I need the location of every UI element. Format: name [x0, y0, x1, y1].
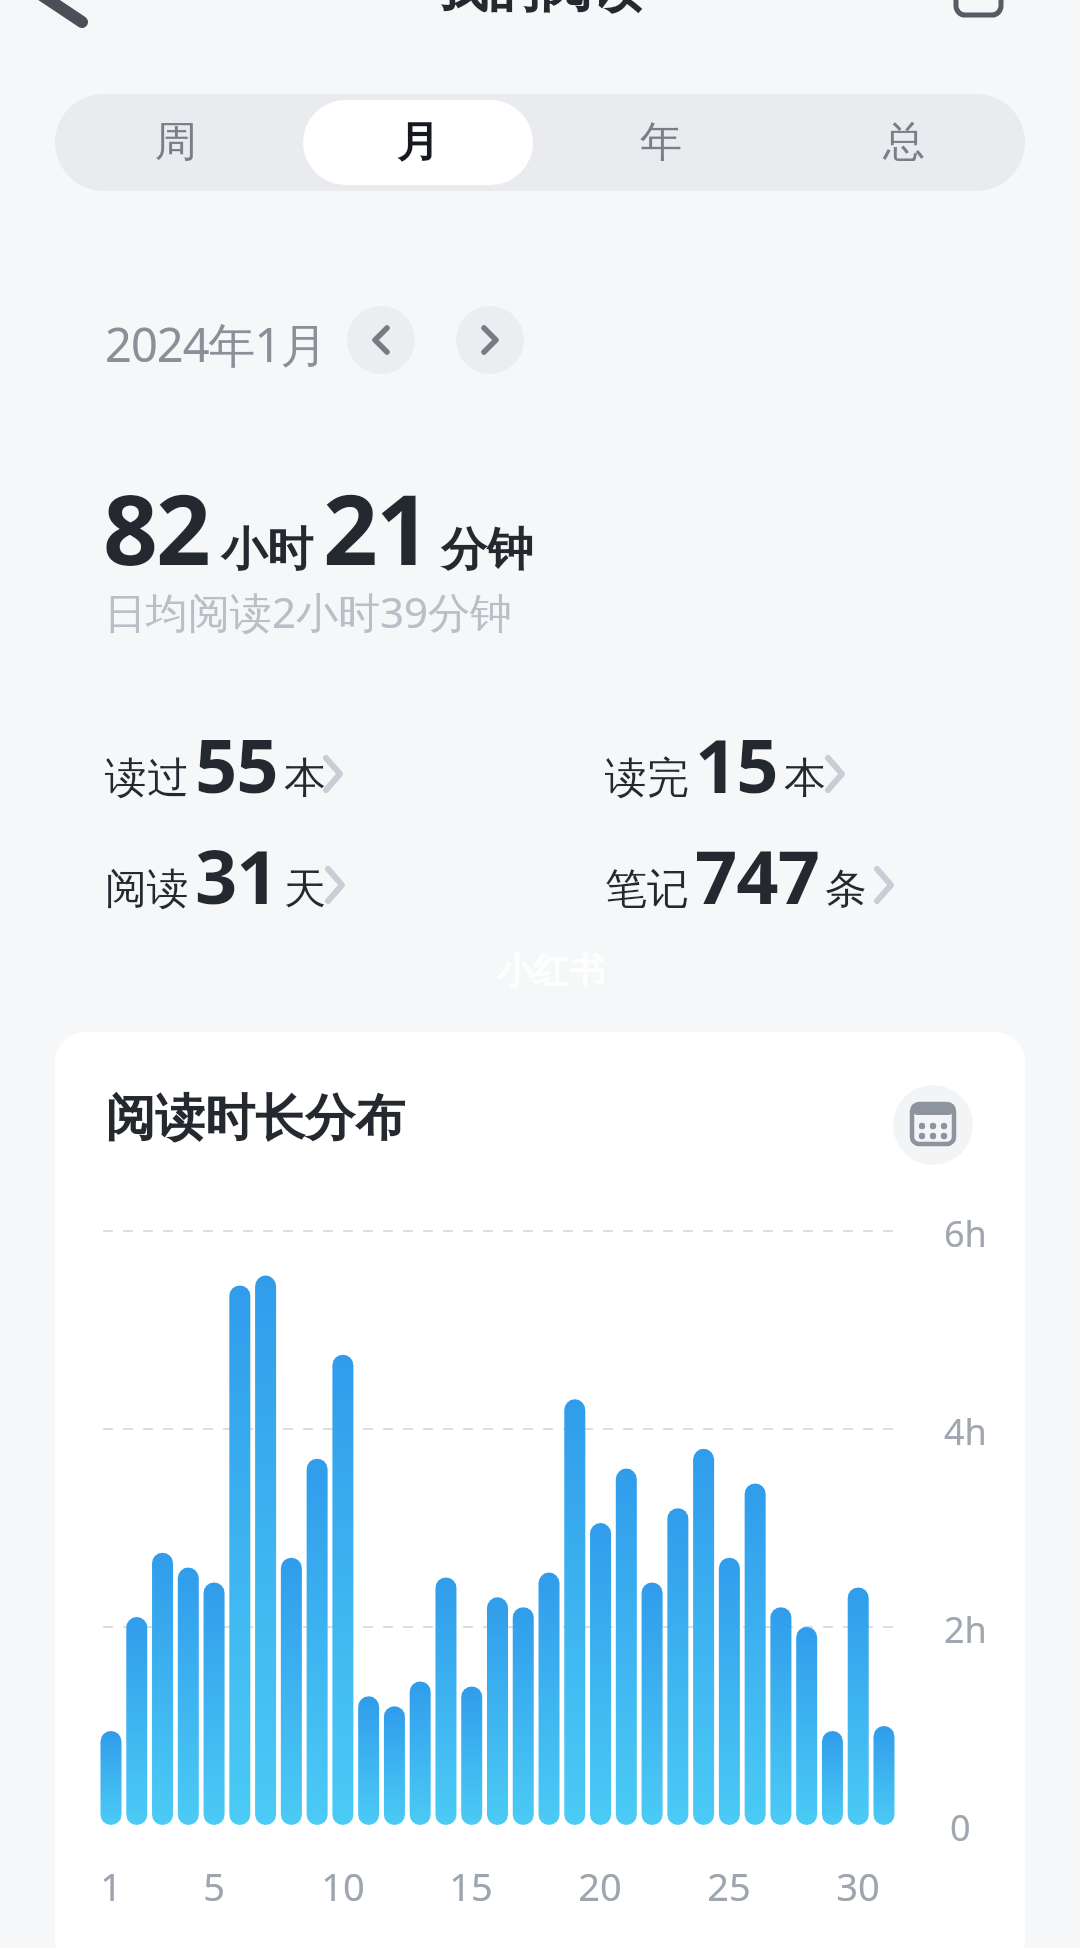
button[interactable]	[893, 1085, 973, 1165]
staticText: 读过	[105, 752, 189, 805]
button[interactable]: 读完	[605, 714, 826, 815]
staticText: 31	[195, 825, 278, 926]
staticText: 条	[825, 863, 867, 916]
staticText: 25	[707, 1860, 751, 1912]
staticText: 2h	[944, 1605, 987, 1654]
staticText: 15	[449, 1860, 493, 1912]
staticText: 天	[284, 863, 326, 916]
staticText: 4h	[944, 1407, 987, 1456]
staticText: 6h	[944, 1209, 987, 1258]
staticText: 小时	[221, 521, 313, 579]
staticText: 2024年1月	[105, 312, 327, 376]
button[interactable]: 周	[55, 94, 297, 191]
staticText: 笔记	[605, 863, 689, 916]
button[interactable]	[940, 0, 1020, 40]
staticText: 分钟	[441, 521, 533, 579]
button[interactable]	[347, 306, 415, 374]
staticText: 月	[397, 116, 439, 169]
button[interactable]	[10, 0, 100, 40]
button[interactable]: 笔记	[605, 825, 867, 926]
staticText: 747	[695, 825, 819, 926]
staticText: 年	[640, 116, 682, 169]
staticText: 总	[883, 116, 925, 169]
button[interactable]	[456, 306, 524, 374]
staticText: 30	[836, 1860, 880, 1912]
staticText: 本	[784, 752, 826, 805]
button[interactable]: 阅读	[105, 825, 326, 926]
staticText: 本	[284, 752, 326, 805]
button[interactable]: 读过	[105, 714, 326, 815]
staticText: 55	[195, 714, 278, 815]
staticText: 读完	[605, 752, 689, 805]
staticText: 0	[950, 1803, 971, 1852]
staticText: 小红书	[497, 948, 605, 993]
staticText: 阅读	[105, 863, 189, 916]
staticText: 15	[695, 714, 778, 815]
staticText: 周	[155, 116, 197, 169]
staticText: 20	[578, 1860, 622, 1912]
staticText: 82	[103, 462, 209, 593]
button[interactable]: 月	[297, 94, 539, 191]
staticText: 10	[321, 1860, 365, 1912]
button[interactable]: 总	[782, 94, 1025, 191]
button[interactable]: 年	[539, 94, 782, 191]
staticText: 5	[203, 1860, 225, 1912]
staticText: 1	[100, 1860, 122, 1912]
staticText: 日均阅读2小时39分钟	[104, 583, 513, 640]
staticText: 我的阅读	[436, 0, 644, 22]
staticText: 阅读时长分布	[105, 1087, 405, 1150]
staticText: 21	[323, 462, 429, 593]
